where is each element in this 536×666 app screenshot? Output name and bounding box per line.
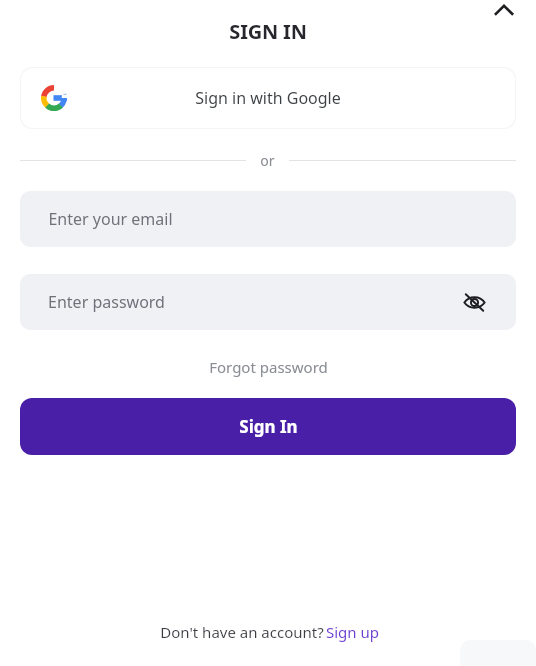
button[interactable]: Forgot password (203, 351, 334, 383)
staticText: Sign up (326, 622, 379, 642)
button[interactable]: Show password (460, 288, 488, 316)
button[interactable]: Collapse (484, 0, 524, 30)
staticText: Enter your email (48, 208, 173, 230)
button[interactable]: Sign in with Google (21, 68, 515, 128)
button[interactable]: Enter your email (20, 191, 516, 247)
staticText: SIGN IN (229, 18, 307, 45)
staticText: Don't have an account? (158, 622, 326, 642)
staticText: Forgot password (209, 357, 328, 377)
button[interactable]: Enter password (20, 274, 516, 330)
button[interactable]: Sign up (326, 622, 379, 642)
staticText: or (260, 151, 275, 170)
button[interactable]: Sign In (20, 398, 516, 455)
staticText: Enter password (48, 291, 165, 313)
staticText: Sign in with Google (195, 87, 341, 109)
staticText: Sign In (239, 415, 298, 438)
